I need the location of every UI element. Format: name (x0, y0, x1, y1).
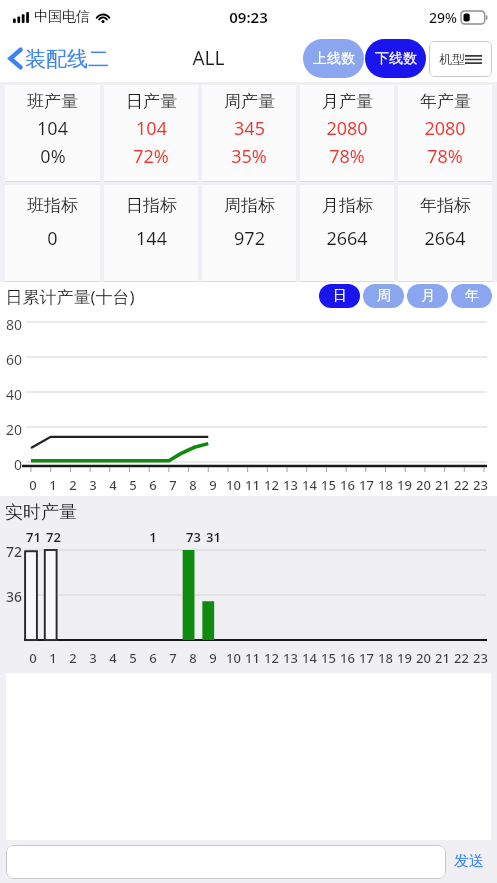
staticText: 周 (377, 287, 391, 305)
staticText: 0 (0, 455, 22, 474)
staticText: 实时产量 (5, 501, 77, 524)
staticText: 4 (109, 649, 117, 667)
staticText: 15 (321, 649, 336, 667)
staticText: 144 (136, 226, 167, 251)
staticText: 14 (302, 649, 317, 667)
staticText: 17 (359, 476, 374, 494)
button[interactable]: 上线数 (303, 39, 364, 78)
staticText: 2 (69, 476, 77, 494)
staticText: 73 (186, 528, 201, 546)
staticText: 9 (209, 476, 217, 494)
button[interactable]: 机型 (429, 41, 492, 77)
staticText: 16 (340, 649, 355, 667)
staticText: 23 (473, 476, 488, 494)
button[interactable]: 周指标 (202, 185, 296, 282)
staticText: 22 (454, 649, 469, 667)
staticText: 0 (47, 226, 58, 251)
staticText: 2 (69, 649, 77, 667)
staticText: 12 (264, 649, 279, 667)
staticText: 中国电信 (34, 8, 90, 26)
staticText: 16 (340, 476, 355, 494)
staticText: 29% (429, 8, 457, 27)
staticText: 40 (0, 385, 22, 404)
staticText: 7 (169, 476, 177, 494)
staticText: 12 (264, 476, 279, 494)
staticText: ALL (192, 45, 225, 71)
button[interactable]: 周 (363, 284, 404, 308)
staticText: 72 (0, 542, 22, 561)
staticText: 9 (209, 649, 217, 667)
staticText: 年 (465, 287, 479, 305)
staticText: 班产量 (27, 91, 78, 112)
staticText: 1 (149, 528, 157, 546)
other: Back (7, 45, 24, 72)
staticText: 104 (136, 116, 167, 141)
staticText: 345 (234, 116, 265, 141)
staticText: 2664 (424, 226, 466, 251)
staticText: 11 (245, 649, 260, 667)
button[interactable]: 发送 (446, 840, 491, 883)
staticText: 周产量 (224, 91, 275, 112)
staticText: 78% (329, 144, 365, 169)
staticText: 23 (473, 649, 488, 667)
button[interactable]: 年 (451, 284, 492, 308)
staticText: 19 (397, 476, 412, 494)
staticText: 71 (26, 528, 41, 546)
staticText: 72 (46, 528, 61, 546)
staticText: 60 (0, 350, 22, 369)
staticText: 20 (416, 649, 431, 667)
button[interactable]: 月 (407, 284, 448, 308)
button[interactable]: 月产量 (300, 85, 394, 182)
button[interactable]: 周产量 (202, 85, 296, 182)
staticText: 72% (133, 144, 169, 169)
staticText: 1 (49, 649, 57, 667)
staticText: 2664 (326, 226, 368, 251)
staticText: 15 (321, 476, 336, 494)
staticText: 6 (149, 476, 157, 494)
staticText: 7 (169, 649, 177, 667)
staticText: 0 (29, 649, 37, 667)
staticText: 80 (0, 315, 22, 334)
staticText: 10 (226, 649, 241, 667)
staticText: 18 (378, 649, 393, 667)
staticText: 0 (29, 476, 37, 494)
staticText: 1 (49, 476, 57, 494)
staticText: 8 (189, 649, 197, 667)
button[interactable]: 日指标 (104, 185, 198, 282)
staticText: 18 (378, 476, 393, 494)
staticText: 4 (109, 476, 117, 494)
staticText: 月产量 (322, 91, 373, 112)
staticText: 装配线二 (25, 46, 109, 72)
button[interactable]: 年产量 (398, 85, 492, 182)
staticText: 5 (129, 476, 137, 494)
staticText: 11 (245, 476, 260, 494)
button[interactable]: 日 (319, 284, 360, 308)
button[interactable] (6, 845, 446, 879)
staticText: 21 (435, 649, 450, 667)
staticText: 周指标 (224, 195, 275, 216)
staticText: 13 (283, 649, 298, 667)
staticText: 机型 (439, 51, 465, 67)
button[interactable]: 班指标 (5, 185, 100, 282)
staticText: 月指标 (322, 195, 373, 216)
staticText: 78% (427, 144, 463, 169)
staticText: 年产量 (420, 91, 471, 112)
button[interactable]: Back (7, 45, 109, 72)
staticText: 35% (231, 144, 267, 169)
button[interactable]: 下线数 (365, 39, 426, 78)
button[interactable]: 年指标 (398, 185, 492, 282)
staticText: 年指标 (420, 195, 471, 216)
staticText: 班指标 (27, 195, 78, 216)
staticText: 21 (435, 476, 450, 494)
button[interactable]: 班产量 (5, 85, 100, 182)
staticText: 22 (454, 476, 469, 494)
staticText: 3 (89, 476, 97, 494)
staticText: 2080 (326, 116, 368, 141)
staticText: 5 (129, 649, 137, 667)
staticText: 日 (333, 287, 347, 305)
staticText: 19 (397, 649, 412, 667)
button[interactable]: 日产量 (104, 85, 198, 182)
staticText: 发送 (454, 852, 484, 871)
staticText: 0% (40, 144, 66, 169)
button[interactable]: 月指标 (300, 185, 394, 282)
